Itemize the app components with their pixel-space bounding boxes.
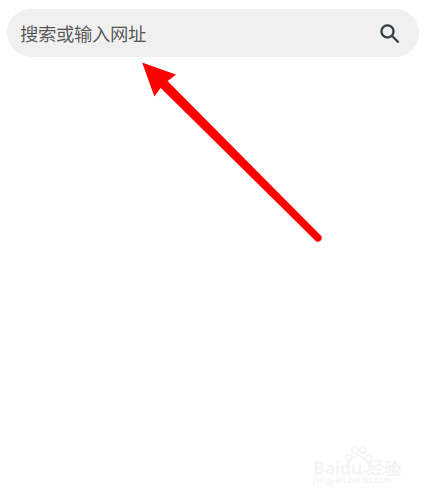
staticText: 经验 xyxy=(367,458,401,480)
staticText: jingyan.baidu.com xyxy=(313,474,391,486)
staticText: Baidu xyxy=(313,456,362,480)
button[interactable]: 搜索或输入网址 xyxy=(7,9,419,57)
staticText: 搜索或输入网址 xyxy=(20,20,146,46)
